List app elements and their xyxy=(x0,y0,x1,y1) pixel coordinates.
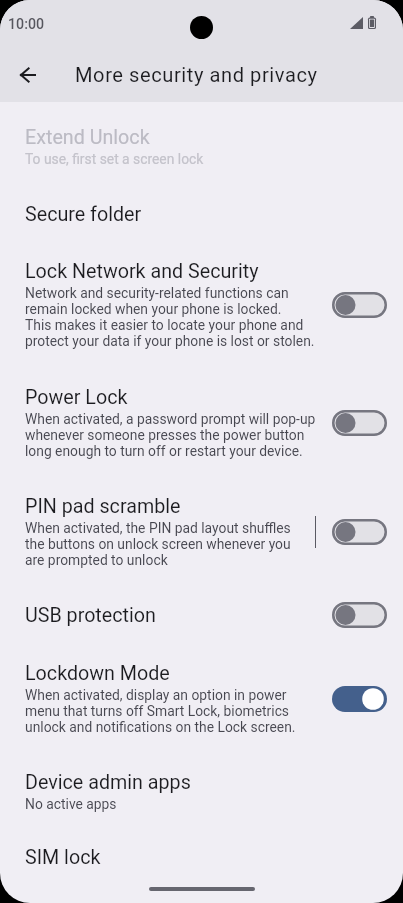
button[interactable]: Off xyxy=(332,519,387,545)
button[interactable]: Off xyxy=(332,602,387,628)
button[interactable]: Secure folder xyxy=(0,203,403,226)
staticText: Lock Network and Security xyxy=(25,260,259,283)
staticText: When activated, display an option in pow… xyxy=(25,687,330,735)
staticText: 10:00 xyxy=(8,16,45,33)
staticText: Secure folder xyxy=(25,203,142,226)
staticText: SIM lock xyxy=(25,846,101,869)
button[interactable]: PIN pad scramble xyxy=(0,495,403,568)
staticText: Device admin apps xyxy=(25,771,191,794)
button[interactable]: Power Lock xyxy=(0,386,403,459)
button[interactable]: Off xyxy=(332,292,387,318)
staticText: More security and privacy xyxy=(75,63,318,87)
button[interactable]: Lockdown Mode xyxy=(0,662,403,735)
staticText: To use, first set a screen lock xyxy=(25,151,330,167)
staticText: Extend Unlock xyxy=(25,126,150,149)
button[interactable]: Device admin apps xyxy=(0,771,403,812)
button[interactable]: Extend Unlock xyxy=(0,126,403,167)
staticText: No active apps xyxy=(25,796,330,812)
button[interactable]: On xyxy=(332,686,387,712)
staticText: When activated, a password prompt will p… xyxy=(25,411,330,459)
button[interactable]: SIM lock xyxy=(0,846,403,869)
staticText: Network and security-related functions c… xyxy=(25,285,330,349)
staticText: PIN pad scramble xyxy=(25,495,181,518)
button[interactable]: Off xyxy=(332,410,387,436)
button[interactable]: USB protection xyxy=(0,602,403,628)
staticText: Power Lock xyxy=(25,386,128,409)
button[interactable]: Navigate up xyxy=(5,52,51,98)
staticText: Lockdown Mode xyxy=(25,662,170,685)
button[interactable]: Lock Network and Security xyxy=(0,260,403,349)
staticText: USB protection xyxy=(25,604,156,627)
staticText: When activated, the PIN pad layout shuff… xyxy=(25,520,315,568)
